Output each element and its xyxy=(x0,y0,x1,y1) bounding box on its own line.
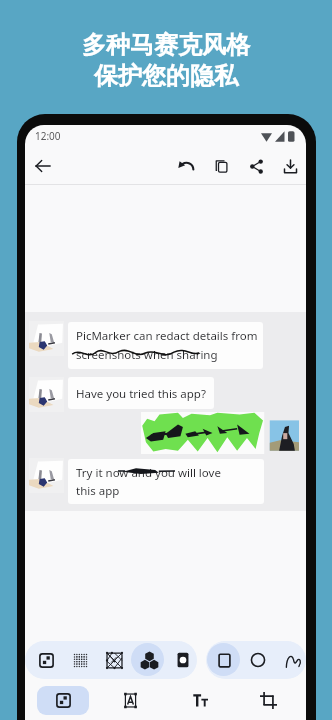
button[interactable]: Try it now and you will love xyxy=(68,459,264,504)
button[interactable]: Share xyxy=(239,148,273,184)
button[interactable]: Mosaic xyxy=(32,684,94,720)
button[interactable]: Back xyxy=(26,148,60,184)
button[interactable]: Photo message xyxy=(141,412,299,454)
button[interactable]: Crop xyxy=(237,684,299,720)
staticText: this app xyxy=(76,483,120,499)
button[interactable]: Solid mosaic xyxy=(164,641,202,679)
button[interactable]: PicMarker can redact details from xyxy=(68,322,263,369)
button[interactable]: Have you tried this app? xyxy=(68,377,214,409)
button[interactable]: Freehand xyxy=(274,641,306,679)
staticText: Try it now and you will love xyxy=(76,465,221,481)
button[interactable]: Download xyxy=(273,148,306,184)
staticText: 多种马赛克风格 xyxy=(82,30,250,60)
button[interactable]: Copy xyxy=(204,148,238,184)
button[interactable]: Text xyxy=(169,684,231,720)
button[interactable]: Dot mosaic xyxy=(61,641,99,679)
button[interactable]: Pixel mosaic xyxy=(27,641,65,679)
button[interactable]: Low poly mosaic xyxy=(95,641,133,679)
button[interactable]: Ellipse xyxy=(239,641,277,679)
button[interactable]: Shape xyxy=(99,684,161,720)
button[interactable]: Hex mosaic xyxy=(130,641,168,679)
button[interactable]: Undo xyxy=(169,148,203,184)
staticText: 保护您的隐私 xyxy=(94,61,238,91)
staticText: Have you tried this app? xyxy=(76,386,206,402)
staticText: screenshots when sharing xyxy=(76,347,218,363)
button[interactable]: Rectangle xyxy=(205,641,243,679)
staticText: 12:00 xyxy=(35,129,61,143)
staticText: PicMarker can redact details from xyxy=(76,328,258,344)
